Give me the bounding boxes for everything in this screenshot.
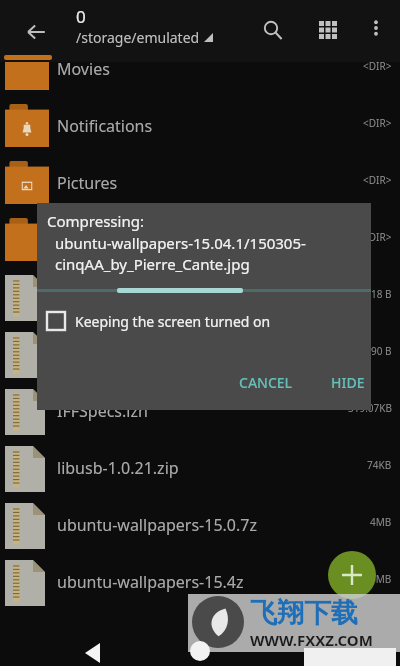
staticText: /storage/emulated <box>76 28 200 47</box>
button[interactable]: HIDE <box>323 367 373 398</box>
staticText: 0 <box>76 5 86 28</box>
button[interactable]: IFFSpecs.lzh <box>0 382 400 439</box>
staticText: CANCEL <box>239 373 293 392</box>
staticText: 90 B <box>371 344 392 358</box>
button[interactable]: ubuntu-wallpapers-15.4z <box>0 553 400 610</box>
staticText: 74KB <box>367 458 392 472</box>
staticText: 18 B <box>371 287 392 301</box>
staticText: Podcasts <box>57 229 124 251</box>
button[interactable]: Back <box>14 10 58 54</box>
button[interactable]: Movies <box>0 40 400 97</box>
button[interactable]: Download.7z <box>0 325 400 382</box>
staticText: ubuntu-wallpapers-15.04.1/150305-cinqAA_… <box>55 233 367 275</box>
button[interactable]: 0 <box>76 5 209 47</box>
staticText: <DIR> <box>363 230 392 244</box>
staticText: 8MB <box>370 572 392 586</box>
button[interactable]: Ringtones <box>0 268 400 325</box>
staticText: Compressing: <box>47 211 144 231</box>
button[interactable]: Search <box>251 8 295 52</box>
staticText: ubuntu-wallpapers-15.4z <box>57 571 244 593</box>
staticText: Notifications <box>57 115 153 137</box>
staticText: <DIR> <box>363 116 392 130</box>
button[interactable]: Pictures <box>0 154 400 211</box>
staticText: <DIR> <box>363 59 392 73</box>
button[interactable]: ubuntu-wallpapers-15.0.7z <box>0 496 400 553</box>
staticText: 飞翔下载 <box>250 596 358 630</box>
button[interactable]: CANCEL <box>231 367 301 398</box>
staticText: Pictures <box>57 172 118 194</box>
button[interactable]: Keeping the screen turned on <box>45 310 263 332</box>
staticText: IFFSpecs.lzh <box>57 400 148 422</box>
staticText: Keeping the screen turned on <box>75 312 271 331</box>
staticText: 319.07KB <box>348 401 392 415</box>
staticText: ubuntu-wallpapers-15.0.7z <box>57 514 257 536</box>
button[interactable]: Podcasts <box>0 211 400 268</box>
staticText: Movies <box>57 58 110 80</box>
staticText: 4MB <box>370 515 392 529</box>
staticText: libusb-1.0.21.zip <box>57 457 179 479</box>
staticText: WWW.FXXZ.COM <box>250 630 373 650</box>
staticText: Ringtones <box>57 286 133 308</box>
staticText: HIDE <box>331 373 365 392</box>
staticText: <DIR> <box>363 173 392 187</box>
button[interactable]: More options <box>356 8 396 48</box>
button[interactable]: Grid view <box>306 8 350 52</box>
button[interactable]: libusb-1.0.21.zip <box>0 439 400 496</box>
button[interactable]: Add <box>328 551 376 599</box>
button[interactable]: Notifications <box>0 97 400 154</box>
button[interactable]: Back <box>78 636 112 666</box>
